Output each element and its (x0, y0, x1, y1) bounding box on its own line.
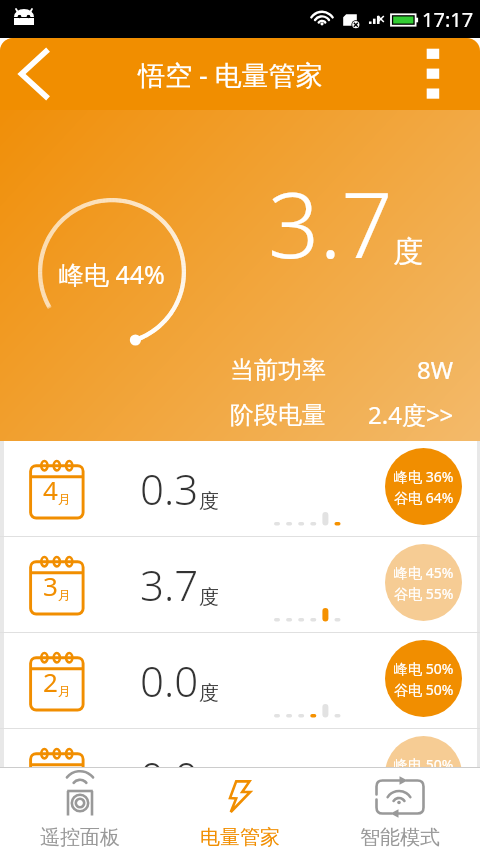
button[interactable]: 智能模式 (320, 768, 480, 854)
staticText: 8W (417, 353, 454, 386)
staticText: 17:17 (422, 6, 474, 33)
staticText: 度 (199, 681, 219, 706)
staticText: 4 (43, 472, 58, 507)
button[interactable]: 峰电 45% (385, 544, 462, 621)
staticText: 电量管家 (200, 825, 280, 850)
staticText: 谷电 64% (394, 488, 454, 507)
staticText: 度 (393, 233, 423, 271)
button[interactable]: 峰电 50% (385, 640, 462, 717)
staticText: 遥控面板 (40, 825, 120, 850)
staticText: 3.7 (140, 556, 199, 613)
button[interactable]: 2 (4, 633, 477, 728)
button[interactable]: 3 (4, 537, 477, 632)
staticText: 月 (58, 683, 71, 699)
staticText: 当前功率 (230, 355, 326, 385)
button[interactable]: 4 (4, 441, 477, 536)
staticText: 峰电 45% (394, 563, 454, 582)
button[interactable]: 遥控面板 (0, 768, 160, 854)
staticText: 峰电 44% (59, 257, 165, 291)
staticText: 0.0 (140, 652, 199, 709)
staticText: 智能模式 (360, 825, 440, 850)
staticText: 悟空 - 电量管家 (138, 56, 323, 93)
staticText: 谷电 50% (394, 680, 454, 699)
button[interactable]: 峰电 50% (385, 736, 462, 767)
staticText: 谷电 55% (394, 584, 454, 603)
button[interactable]: 峰电 36% (385, 448, 462, 525)
staticText: 月 (58, 491, 71, 507)
staticText: 度 (199, 489, 219, 514)
staticText: 2.4度>> (368, 398, 454, 431)
staticText: 阶段电量 (230, 400, 326, 430)
staticText: 2 (43, 664, 58, 699)
staticText: 0.3 (140, 460, 199, 517)
button[interactable]: 电量管家 (160, 768, 320, 854)
button[interactable]: More options (420, 38, 480, 110)
staticText: 月 (58, 587, 71, 603)
staticText: 峰电 36% (394, 467, 454, 486)
staticText: 3.7 (268, 162, 393, 285)
staticText: 峰电 50% (394, 755, 454, 767)
button[interactable]: 1 (4, 729, 477, 767)
staticText: 度 (199, 585, 219, 610)
staticText: 0.0 (140, 748, 199, 767)
staticText: 峰电 50% (394, 659, 454, 678)
staticText: 3 (43, 568, 58, 603)
staticText: 1 (43, 760, 58, 767)
button[interactable]: Back (0, 38, 66, 110)
